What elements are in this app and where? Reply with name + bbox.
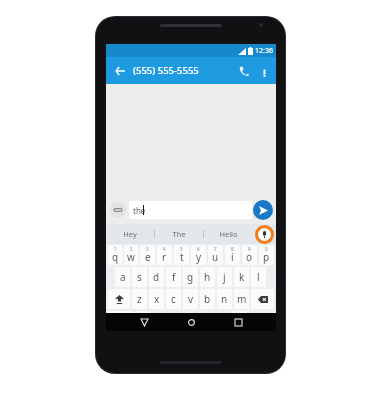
staticText: 2 [130, 246, 133, 252]
button[interactable]: j [217, 267, 232, 287]
staticText: m [237, 292, 247, 306]
staticText: Hey [123, 229, 137, 239]
staticText: u [212, 250, 219, 264]
button[interactable]: The [155, 224, 203, 244]
staticText: f [172, 270, 176, 284]
staticText: d [153, 270, 160, 284]
staticText: t [180, 250, 184, 264]
staticText: 0 [265, 246, 268, 252]
staticText: 7 [214, 246, 217, 252]
button[interactable]: c [166, 289, 181, 309]
staticText: v [188, 292, 194, 306]
button[interactable]: z [132, 289, 147, 309]
button[interactable]: l [251, 267, 266, 287]
button[interactable]: Back [135, 313, 153, 331]
button[interactable]: ?1 [108, 311, 133, 330]
staticText: 4 [163, 246, 166, 252]
staticText: , [141, 315, 144, 326]
staticText: 5 [180, 246, 183, 252]
staticText: j [223, 270, 226, 284]
button[interactable]: g [183, 267, 198, 287]
button[interactable]: . [232, 311, 246, 330]
staticText: 8 [231, 246, 234, 252]
staticText: o [246, 250, 253, 264]
button[interactable]: 9 [242, 245, 257, 265]
button[interactable]: h [200, 267, 215, 287]
staticText: q [112, 250, 119, 264]
button[interactable]: Back [110, 61, 130, 81]
button[interactable]: a [115, 267, 130, 287]
button[interactable]: 8 [225, 245, 240, 265]
button[interactable]: 5 [174, 245, 189, 265]
button[interactable]: m [234, 289, 249, 309]
button[interactable]: the [129, 201, 252, 219]
staticText: a [120, 270, 126, 284]
staticText: k [239, 270, 245, 284]
button[interactable]: 7 [208, 245, 223, 265]
staticText: i [231, 250, 234, 264]
staticText: 9 [248, 246, 251, 252]
staticText: 6 [197, 246, 200, 252]
button[interactable]: Voice input [255, 225, 274, 244]
staticText: b [204, 292, 211, 306]
button[interactable] [108, 289, 130, 309]
button[interactable]: v [183, 289, 198, 309]
staticText: l [257, 270, 260, 284]
button[interactable]: x [149, 289, 164, 309]
button[interactable]: Hey [106, 224, 154, 244]
button[interactable]: b [200, 289, 215, 309]
staticText: h [204, 270, 211, 284]
button[interactable]: Hello [204, 224, 252, 244]
staticText: g [187, 270, 194, 284]
button[interactable]: s [132, 267, 147, 287]
button[interactable]: 2 [124, 245, 138, 265]
button[interactable]: Send [253, 200, 273, 220]
staticText: 3 [146, 246, 149, 252]
button[interactable]: More options [255, 62, 273, 80]
button[interactable]: f [166, 267, 181, 287]
staticText: z [137, 292, 142, 306]
staticText: the [133, 205, 146, 216]
staticText: c [171, 292, 176, 306]
staticText: 12:36 [255, 46, 273, 56]
button[interactable]: Space [158, 317, 223, 324]
button[interactable]: Call [234, 61, 254, 81]
staticText: x [154, 292, 160, 306]
staticText: The [172, 229, 186, 239]
button[interactable]: k [234, 267, 249, 287]
staticText: 1 [114, 246, 117, 252]
button[interactable]: 1 [108, 245, 122, 265]
staticText: (555) 555-5555 [133, 64, 199, 77]
staticText: s [137, 270, 142, 284]
button[interactable]: 3 [140, 245, 155, 265]
button[interactable]: Backspace [251, 289, 274, 309]
button[interactable]: 0 [259, 245, 274, 265]
staticText: n [221, 292, 228, 306]
button[interactable]: Home [182, 313, 200, 331]
staticText: r [162, 250, 167, 264]
staticText: Hello [219, 229, 238, 239]
button[interactable]: n [217, 289, 232, 309]
staticText: w [127, 250, 135, 264]
staticText: y [196, 250, 202, 264]
staticText: . [238, 315, 241, 326]
staticText: e [145, 250, 151, 264]
button[interactable]: 4 [157, 245, 172, 265]
button[interactable]: Attach [110, 202, 126, 218]
staticText: p [263, 250, 270, 264]
button[interactable]: 6 [191, 245, 206, 265]
button[interactable]: Recent apps [229, 313, 247, 331]
button[interactable]: , [135, 311, 149, 330]
button[interactable]: d [149, 267, 164, 287]
